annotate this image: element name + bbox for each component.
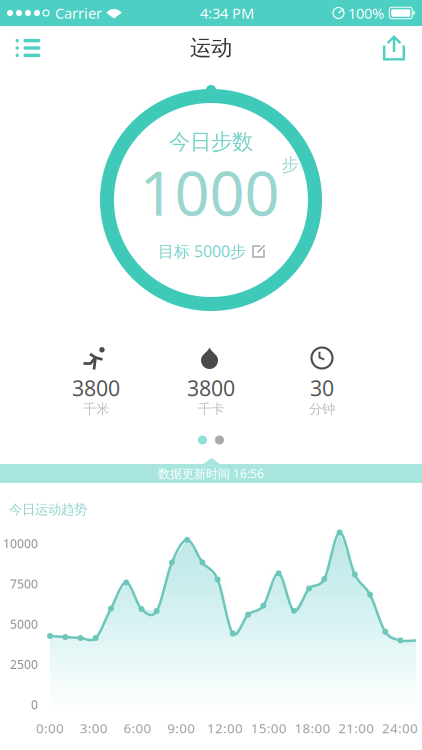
staticText: 0:00 bbox=[36, 719, 64, 737]
staticText: 目标 5000步 bbox=[158, 240, 246, 262]
staticText: 千卡 bbox=[198, 401, 224, 417]
staticText: 分钟 bbox=[309, 401, 335, 417]
button[interactable]: Share bbox=[370, 26, 418, 70]
staticText: 10000 bbox=[3, 535, 38, 551]
staticText: 7500 bbox=[10, 576, 38, 592]
staticText: 2500 bbox=[10, 656, 38, 672]
staticText: 100% bbox=[348, 3, 384, 23]
staticText: 15:00 bbox=[251, 719, 287, 737]
button[interactable]: Menu bbox=[4, 26, 52, 70]
staticText: 30 bbox=[310, 374, 334, 402]
staticText: 6:00 bbox=[123, 719, 151, 737]
staticText: 4:34 PM bbox=[200, 3, 254, 23]
staticText: 9:00 bbox=[167, 719, 195, 737]
staticText: 千米 bbox=[83, 401, 109, 417]
staticText: 3:00 bbox=[80, 719, 108, 737]
staticText: 3800 bbox=[187, 374, 235, 402]
staticText: 今日运动趋势 bbox=[9, 501, 87, 518]
staticText: 12:00 bbox=[207, 719, 243, 737]
staticText: 步 bbox=[281, 154, 298, 176]
staticText: 18:00 bbox=[294, 719, 330, 737]
staticText: 24:00 bbox=[382, 719, 418, 737]
staticText: 5000 bbox=[10, 616, 38, 632]
staticText: 今日步数 bbox=[169, 129, 253, 155]
staticText: Carrier bbox=[55, 3, 102, 23]
staticText: 运动 bbox=[190, 35, 232, 61]
staticText: 数据更新时间 16:56 bbox=[158, 465, 264, 481]
staticText: 0 bbox=[31, 696, 38, 712]
staticText: 21:00 bbox=[338, 719, 374, 737]
staticText: 1000 bbox=[139, 151, 279, 233]
staticText: 3800 bbox=[72, 374, 120, 402]
